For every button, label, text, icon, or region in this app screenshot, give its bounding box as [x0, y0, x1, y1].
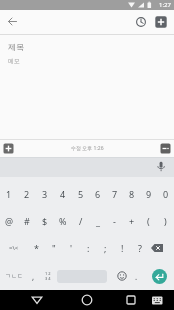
button[interactable]: '	[63, 234, 80, 262]
staticText: +	[129, 215, 135, 227]
button[interactable]: 3	[36, 180, 54, 207]
button[interactable]: "	[45, 234, 63, 262]
button[interactable]	[0, 10, 24, 34]
staticText: /	[79, 215, 83, 227]
staticText: ,	[32, 271, 35, 282]
staticText: 7	[112, 188, 118, 200]
button[interactable]: (	[140, 207, 157, 234]
staticText: %	[59, 215, 67, 227]
button[interactable]: 0	[157, 180, 174, 207]
staticText: .	[135, 271, 138, 282]
staticText: 1 2	[45, 271, 51, 276]
button[interactable]: 1 2	[40, 262, 55, 290]
button[interactable]: ;	[97, 234, 114, 262]
button[interactable]: _	[89, 207, 106, 234]
staticText: 2	[24, 188, 30, 200]
button[interactable]	[131, 12, 151, 32]
button[interactable]	[27, 290, 47, 310]
staticText: ;	[104, 242, 107, 254]
button[interactable]: 1	[0, 180, 18, 207]
staticText: 1:27	[159, 1, 171, 9]
staticText: 8	[129, 188, 135, 200]
button[interactable]	[144, 262, 174, 290]
button[interactable]: ㄱㄴㄷ	[0, 262, 27, 290]
button[interactable]: 5	[72, 180, 89, 207]
staticText: ?	[138, 242, 142, 254]
button[interactable]	[121, 290, 141, 310]
button[interactable]: =\<	[0, 234, 27, 262]
button[interactable]: %	[54, 207, 72, 234]
button[interactable]: )	[157, 207, 174, 234]
button[interactable]	[77, 290, 97, 310]
staticText: :	[87, 242, 90, 254]
button[interactable]: 8	[123, 180, 140, 207]
button[interactable]: 4	[54, 180, 72, 207]
staticText: 메모	[8, 57, 20, 65]
staticText: (	[147, 215, 150, 227]
button[interactable]: 2	[18, 180, 36, 207]
button[interactable]: :	[80, 234, 97, 262]
staticText: #	[24, 215, 30, 227]
staticText: 1	[6, 188, 12, 200]
button[interactable]	[152, 158, 170, 176]
button[interactable]: @	[0, 207, 18, 234]
staticText: 4	[60, 188, 66, 200]
staticText: *	[34, 242, 39, 254]
button[interactable]	[0, 140, 17, 157]
button[interactable]	[148, 234, 165, 262]
button[interactable]: -	[106, 207, 123, 234]
staticText: =\<	[9, 244, 19, 252]
button[interactable]: 6	[89, 180, 106, 207]
button[interactable]	[114, 262, 129, 290]
button[interactable]: +	[123, 207, 140, 234]
button[interactable]: .	[129, 262, 144, 290]
staticText: 3 4	[45, 276, 51, 281]
button[interactable]: ?	[131, 234, 148, 262]
button[interactable]: 7	[106, 180, 123, 207]
staticText: 0	[163, 188, 169, 200]
staticText: !	[121, 242, 124, 254]
staticText: "	[52, 242, 56, 254]
button[interactable]: /	[72, 207, 89, 234]
staticText: $	[42, 215, 48, 227]
staticText: @	[5, 215, 14, 227]
button[interactable]: #	[18, 207, 36, 234]
button[interactable]: $	[36, 207, 54, 234]
staticText: )	[164, 215, 167, 227]
staticText: ㄱㄴㄷ	[5, 272, 23, 280]
staticText: -	[113, 215, 116, 227]
button[interactable]: ,	[27, 262, 40, 290]
staticText: 수정 오후 1:26	[71, 145, 104, 152]
button[interactable]: 9	[140, 180, 157, 207]
staticText: 5	[78, 188, 84, 200]
staticText: 3	[42, 188, 48, 200]
button[interactable]	[157, 140, 174, 157]
button[interactable]: *	[27, 234, 45, 262]
button[interactable]: !	[114, 234, 131, 262]
staticText: 제목	[8, 42, 24, 52]
button[interactable]	[148, 291, 166, 309]
staticText: 6	[95, 188, 101, 200]
staticText: 9	[146, 188, 152, 200]
button[interactable]	[151, 12, 171, 32]
staticText: _	[96, 215, 100, 227]
staticText: '	[70, 242, 73, 254]
